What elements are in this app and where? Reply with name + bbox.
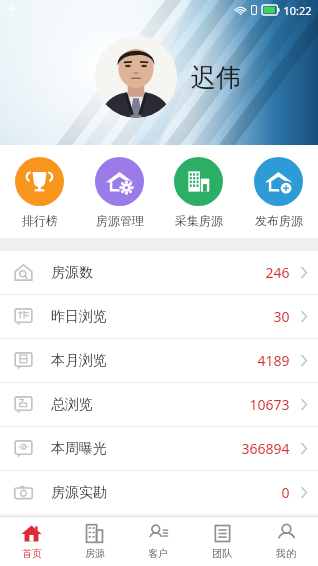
staticText: 发布房源 — [255, 213, 303, 228]
staticText: 4189 — [257, 351, 290, 370]
staticText: 采集房源 — [175, 213, 223, 228]
staticText: 团队 — [212, 547, 232, 560]
staticText: 246 — [265, 263, 290, 282]
button[interactable]: 首页 — [0, 517, 63, 566]
staticText: 客户 — [148, 547, 168, 560]
button[interactable]: 房源实勘 — [0, 471, 318, 514]
button[interactable]: 客户 — [126, 517, 190, 566]
button[interactable]: 房源管理 — [87, 155, 152, 230]
staticText: 昨日浏览 — [51, 308, 107, 326]
staticText: 排行榜 — [22, 213, 58, 228]
staticText: 30 — [273, 307, 290, 326]
button[interactable]: 本周曝光 — [0, 427, 318, 470]
button[interactable]: 我的 — [254, 517, 318, 566]
button[interactable]: 昨日浏览 — [0, 295, 318, 338]
staticText: 我的 — [276, 547, 296, 560]
staticText: 首页 — [22, 547, 42, 560]
staticText: 10:22 — [283, 3, 312, 18]
staticText: 366894 — [241, 439, 290, 458]
button[interactable]: 本月浏览 — [0, 339, 318, 382]
staticText: 房源数 — [51, 264, 93, 282]
button[interactable]: 房源数 — [0, 251, 318, 294]
staticText: 房源管理 — [96, 213, 144, 228]
staticText: 本月浏览 — [51, 352, 107, 370]
other: Profile photo — [95, 36, 177, 118]
staticText: 迟伟 — [191, 62, 241, 93]
staticText: 房源 — [85, 547, 105, 560]
staticText: 10673 — [249, 395, 290, 414]
staticText: 0 — [281, 483, 290, 502]
button[interactable]: 发布房源 — [246, 155, 311, 230]
staticText: 本周曝光 — [51, 440, 107, 458]
button[interactable]: 采集房源 — [166, 155, 231, 230]
staticText: 房源实勘 — [51, 484, 107, 502]
button[interactable]: 总浏览 — [0, 383, 318, 426]
button[interactable]: 房源 — [63, 517, 126, 566]
staticText: 总浏览 — [51, 396, 93, 414]
button[interactable]: 排行榜 — [7, 155, 72, 230]
button[interactable]: 团队 — [190, 517, 254, 566]
